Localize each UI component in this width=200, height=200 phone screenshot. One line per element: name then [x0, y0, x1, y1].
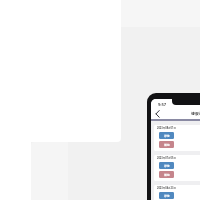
staticText: 2023年04月23日 — [157, 186, 176, 189]
button[interactable]: 2023年04月23日 — [154, 185, 200, 200]
staticText: 撤销 — [164, 143, 170, 146]
staticText: 详情 — [164, 134, 170, 137]
staticText: 2023年08月01日 — [157, 126, 176, 129]
button[interactable]: 撤销 — [159, 141, 174, 148]
button[interactable]: 详情 — [159, 192, 174, 199]
button[interactable]: 详情 — [159, 162, 174, 169]
staticText: 详情 — [164, 164, 170, 167]
button[interactable]: 2023年08月01日 — [154, 125, 200, 151]
button[interactable]: Back — [153, 109, 162, 118]
staticText: 2023年07月05日 — [157, 156, 176, 159]
staticText: 9:57 — [158, 102, 167, 108]
staticText: 详情 — [164, 194, 170, 197]
staticText: 撤销 — [164, 173, 170, 176]
button[interactable]: 撤销 — [159, 171, 174, 178]
button[interactable]: 详情 — [159, 132, 174, 139]
button[interactable]: 2023年07月05日 — [154, 155, 200, 181]
staticText: 请假记录 — [191, 111, 200, 116]
